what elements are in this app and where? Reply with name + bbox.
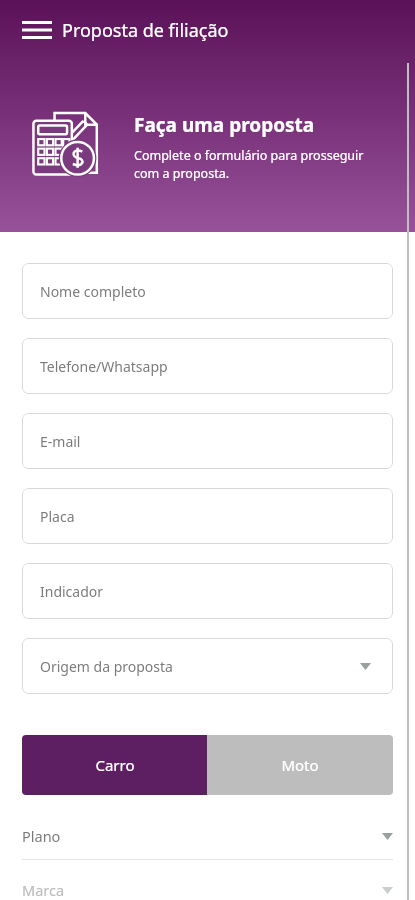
staticText: Marca [22, 880, 65, 900]
button[interactable]: Plano [22, 819, 393, 860]
staticText: Telefone/Whatsapp [40, 357, 168, 376]
staticText: Complete o formulário para prosseguir co… [134, 147, 364, 182]
button[interactable]: Indicador [22, 563, 393, 619]
button[interactable]: Carro [22, 735, 207, 795]
button[interactable]: Marca [22, 880, 393, 900]
button[interactable]: Placa [22, 488, 393, 544]
staticText: Faça uma proposta [134, 112, 315, 138]
button[interactable]: Moto [207, 735, 393, 795]
staticText: Indicador [40, 582, 104, 601]
button[interactable]: E-mail [22, 413, 393, 469]
button[interactable]: Telefone/Whatsapp [22, 338, 393, 394]
staticText: Proposta de filiação [62, 18, 229, 43]
staticText: Nome completo [40, 282, 146, 301]
button[interactable]: Origem da proposta [22, 638, 393, 694]
staticText: Plano [22, 826, 61, 846]
staticText: Placa [40, 507, 75, 526]
button[interactable]: Open navigation menu [12, 5, 62, 55]
button[interactable]: Nome completo [22, 263, 393, 319]
staticText: Carro [95, 755, 135, 775]
staticText: Moto [281, 755, 319, 775]
staticText: Origem da proposta [40, 657, 173, 676]
staticText: E-mail [40, 432, 81, 451]
